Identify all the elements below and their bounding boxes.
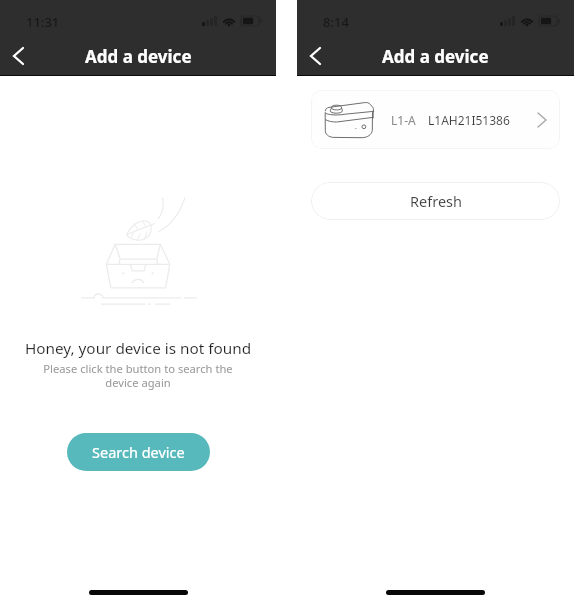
staticText: Add a device bbox=[382, 45, 489, 68]
button[interactable]: Back bbox=[297, 38, 333, 74]
staticText: Add a device bbox=[85, 45, 192, 68]
staticText: 8:14 bbox=[323, 13, 349, 31]
staticText: Refresh bbox=[410, 191, 462, 211]
staticText: 11:31 bbox=[26, 13, 60, 31]
button[interactable]: Back bbox=[0, 38, 36, 74]
button[interactable]: Refresh bbox=[311, 182, 560, 220]
button[interactable]: L1-A bbox=[311, 90, 560, 149]
staticText: Please click the button to search the de… bbox=[0, 361, 276, 391]
button[interactable]: Search device bbox=[67, 433, 210, 471]
staticText: Search device bbox=[92, 442, 185, 462]
staticText: L1-A bbox=[391, 112, 416, 128]
staticText: L1AH21I51386 bbox=[428, 112, 510, 128]
staticText: Honey, your device is not found bbox=[0, 338, 276, 359]
